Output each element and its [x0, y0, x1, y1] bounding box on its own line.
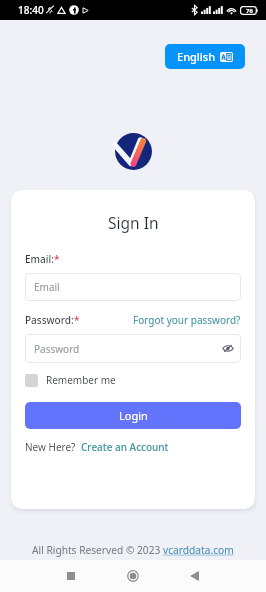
staticText: English: [177, 49, 216, 64]
staticText: 76: [246, 7, 253, 15]
button[interactable]: English: [165, 44, 245, 69]
staticText: Sign In: [108, 212, 159, 233]
staticText: Password: [34, 342, 80, 356]
staticText: Login: [119, 408, 148, 423]
staticText: Email:: [25, 252, 54, 266]
staticText: All Rights Reserved © 2023: [32, 543, 163, 557]
button[interactable]: Home: [113, 560, 153, 592]
staticText: Password:: [25, 313, 74, 327]
staticText: New Here?: [25, 440, 76, 454]
staticText: *: [74, 313, 80, 327]
button[interactable]: Show password: [222, 344, 234, 353]
button[interactable]: Email: [25, 273, 241, 301]
button[interactable]: Login: [25, 402, 241, 429]
button[interactable]: Password: [25, 334, 241, 363]
button[interactable]: Back: [174, 560, 214, 592]
staticText: Email: [34, 280, 60, 294]
button[interactable]: Create an Account: [81, 440, 169, 454]
button[interactable]: Forgot your password?: [133, 313, 241, 327]
staticText: Remember me: [46, 373, 116, 387]
button[interactable]: Remember me: [25, 373, 116, 387]
staticText: 18:40: [18, 3, 44, 17]
button[interactable]: Recent apps: [51, 560, 91, 592]
staticText: *: [54, 252, 60, 266]
button[interactable]: vcarddata.com: [163, 543, 234, 557]
